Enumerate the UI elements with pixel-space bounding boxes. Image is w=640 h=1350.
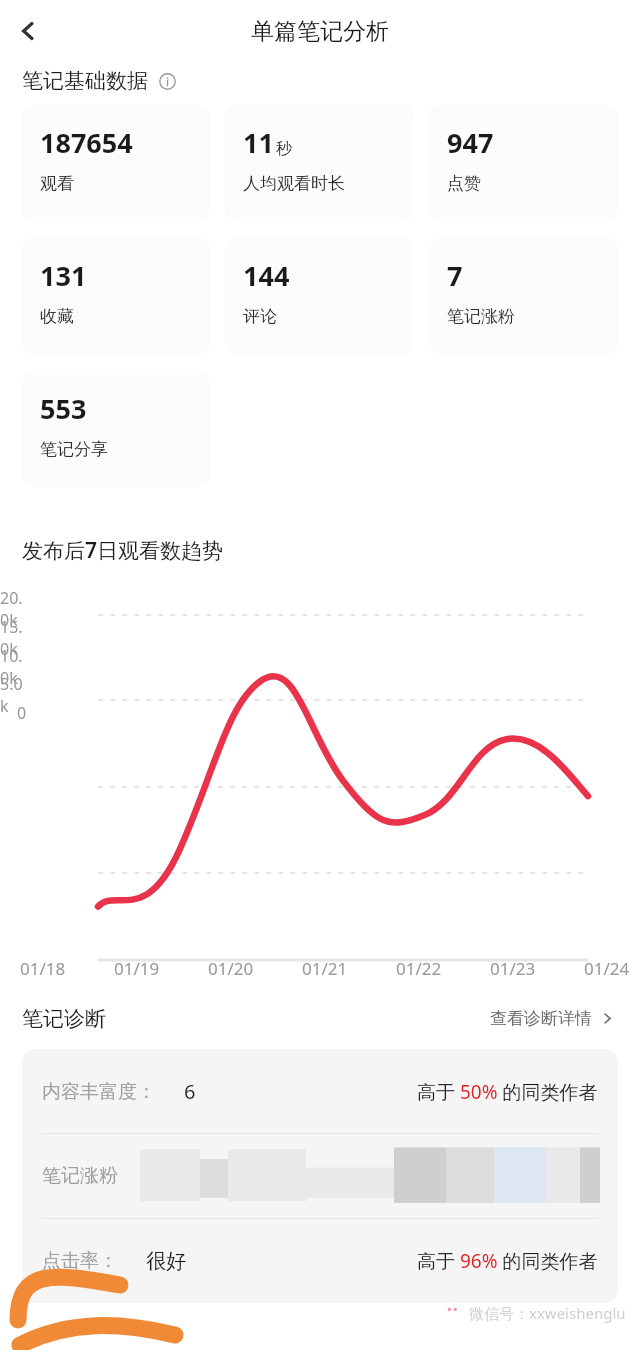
button[interactable]: Back	[0, 3, 56, 59]
staticText: 11	[243, 124, 274, 161]
staticText: 7	[447, 257, 463, 294]
staticText: 收藏	[40, 306, 74, 327]
button[interactable]: 553	[22, 370, 210, 488]
button[interactable]: 查看诊断详情	[486, 1004, 618, 1033]
staticText: 笔记诊断	[22, 1006, 106, 1032]
staticText: 评论	[243, 306, 277, 327]
staticText: 查看诊断详情	[490, 1008, 592, 1029]
staticText: 同类作者	[522, 1164, 598, 1188]
staticText: 笔记涨粉	[42, 1164, 118, 1188]
staticText: 01/21	[302, 957, 348, 980]
staticText: 内容丰富度：	[42, 1080, 156, 1104]
button[interactable]: 11	[225, 104, 414, 222]
button[interactable]: 947	[429, 104, 618, 222]
staticText: 秒	[276, 139, 292, 159]
staticText: 微信号：xxweishenglu	[469, 1303, 626, 1323]
staticText: 01/23	[490, 957, 536, 980]
staticText: 人均观看时长	[243, 173, 345, 194]
staticText: 01/22	[396, 957, 442, 980]
staticText: 0	[17, 702, 27, 724]
staticText: 01/19	[114, 957, 160, 980]
staticText: 笔记分享	[40, 439, 108, 460]
staticText: 144	[243, 257, 290, 294]
staticText: 高于 96% 的同类作者	[417, 1248, 598, 1274]
staticText: 单篇笔记分析	[251, 17, 389, 46]
staticText: 很好	[146, 1249, 186, 1274]
staticText: 01/20	[208, 957, 254, 980]
staticText: 点击率：	[42, 1249, 118, 1273]
staticText: 笔记基础数据	[22, 68, 148, 94]
staticText: 5.0k	[0, 673, 27, 717]
staticText: 15.0k	[0, 616, 27, 660]
staticText: 131	[40, 257, 87, 294]
staticText: 6	[184, 1078, 196, 1105]
staticText: 20.0k	[0, 587, 27, 631]
staticText: 点赞	[447, 173, 481, 194]
staticText: 947	[447, 124, 494, 161]
staticText: 553	[40, 390, 87, 427]
staticText: 笔记涨粉	[447, 306, 515, 327]
staticText: 01/24	[584, 957, 630, 980]
button[interactable]: 内容丰富度：	[22, 1049, 618, 1303]
staticText: 观看	[40, 173, 74, 194]
button[interactable]: 7	[429, 237, 618, 355]
button[interactable]: 131	[22, 237, 210, 355]
staticText: 187654	[40, 124, 133, 161]
button[interactable]: Info	[156, 70, 178, 92]
staticText: 发布后7日观看数趋势	[22, 536, 224, 565]
button[interactable]: 187654	[22, 104, 210, 222]
staticText: 10.0k	[0, 645, 27, 689]
button[interactable]: 144	[225, 237, 414, 355]
staticText: 01/18	[20, 957, 66, 980]
staticText: 高于 50% 的同类作者	[417, 1079, 598, 1105]
